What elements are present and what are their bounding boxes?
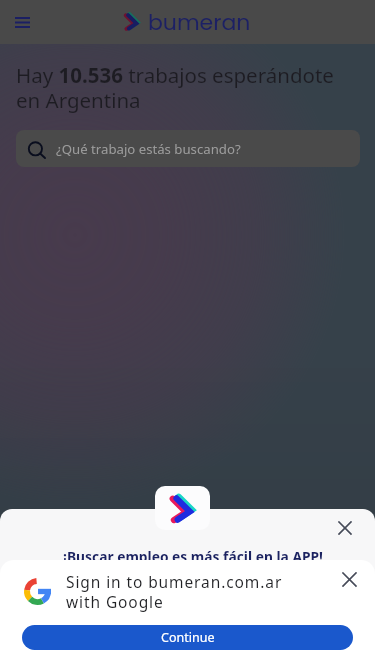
staticText: ¿Qué trabajo estás buscando? (56, 140, 241, 158)
staticText: Sign in to bumeran.com.ar with Google (66, 571, 283, 612)
button[interactable]: Continue (22, 625, 353, 650)
button[interactable]: ¿Qué trabajo estás buscando? (16, 130, 360, 167)
staticText: Continue (161, 629, 215, 646)
button[interactable]: Close app banner (325, 509, 365, 548)
button[interactable]: Menu (0, 0, 44, 44)
staticText: ¡Buscar empleo es más fácil en la APP! (63, 547, 323, 566)
button[interactable]: bumeran home (124, 7, 251, 38)
staticText: Hay 10.536 trabajos esperándote en Argen… (16, 61, 334, 114)
button[interactable]: bumeran app (155, 486, 210, 530)
button[interactable]: Close sign in (329, 560, 369, 599)
staticText: bumeran (148, 7, 251, 38)
